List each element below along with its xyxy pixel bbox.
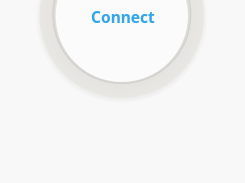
button[interactable]: Connect (91, 6, 155, 27)
